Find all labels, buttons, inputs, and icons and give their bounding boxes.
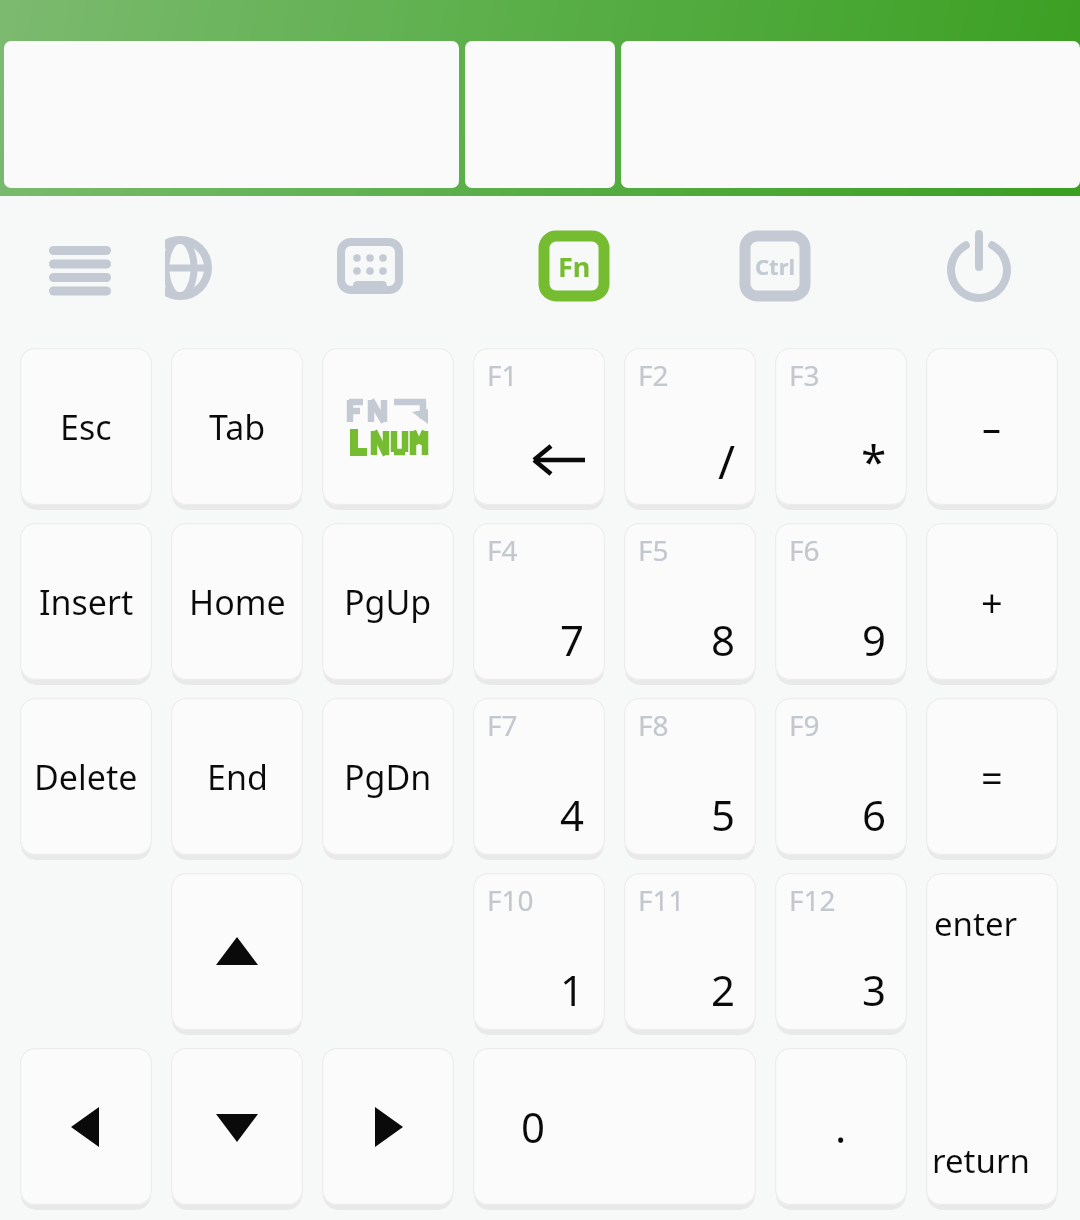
staticText: *	[861, 430, 887, 493]
staticText: 1	[560, 961, 585, 1018]
button[interactable]: PgDn	[322, 698, 454, 855]
staticText: Insert	[39, 579, 134, 625]
button[interactable]: F10	[473, 873, 605, 1030]
button[interactable]: Arrow right	[322, 1048, 454, 1205]
button[interactable]: enter	[926, 873, 1058, 1205]
staticText: –	[982, 401, 1002, 453]
staticText: 2	[711, 961, 736, 1018]
button[interactable]: Menu	[36, 228, 124, 304]
staticText: /	[718, 430, 736, 493]
staticText: Tab	[209, 404, 266, 450]
staticText: F4	[487, 531, 518, 569]
staticText: F11	[638, 881, 685, 919]
staticText: PgDn	[344, 754, 432, 800]
button[interactable]: Power	[940, 226, 1018, 306]
staticText: 8	[711, 611, 736, 668]
button[interactable]: F7	[473, 698, 605, 855]
staticText: F2	[638, 356, 669, 394]
button[interactable]: Backspace	[473, 348, 605, 505]
staticText: 5	[711, 786, 736, 843]
staticText: enter	[934, 901, 1018, 946]
staticText: F10	[487, 881, 534, 919]
staticText: PgUp	[344, 579, 432, 625]
button[interactable]: –	[926, 348, 1058, 505]
staticText: F6	[789, 531, 820, 569]
staticText: F8	[638, 706, 669, 744]
staticText: return	[932, 1138, 1030, 1183]
button[interactable]: F2	[624, 348, 756, 505]
button[interactable]: Control key	[739, 230, 811, 302]
button[interactable]: PgUp	[322, 523, 454, 680]
button[interactable]: F12	[775, 873, 907, 1030]
button[interactable]: Home	[171, 523, 303, 680]
staticText: 3	[862, 961, 887, 1018]
button[interactable]: Function key Fn	[538, 230, 610, 302]
button[interactable]: Suggestion 2	[465, 41, 615, 188]
staticText: Home	[189, 579, 286, 625]
staticText: +	[981, 576, 1003, 628]
staticText: F1	[487, 356, 518, 394]
button[interactable]: Esc	[20, 348, 152, 505]
button[interactable]: Suggestion 3	[621, 41, 1080, 188]
staticText: F5	[638, 531, 669, 569]
button[interactable]: F3	[775, 348, 907, 505]
staticText: =	[981, 751, 1003, 803]
button[interactable]: Tab	[171, 348, 303, 505]
staticText: F9	[789, 706, 820, 744]
button[interactable]: F9	[775, 698, 907, 855]
button[interactable]: Suggestion 1	[4, 41, 459, 188]
staticText: 7	[560, 611, 585, 668]
button[interactable]: F8	[624, 698, 756, 855]
staticText: Esc	[60, 404, 112, 450]
button[interactable]: Arrow up	[171, 873, 303, 1030]
button[interactable]: Keyboard	[331, 228, 409, 306]
button[interactable]: F4	[473, 523, 605, 680]
staticText: 6	[862, 786, 887, 843]
button[interactable]: Insert	[20, 523, 152, 680]
button[interactable]: F6	[775, 523, 907, 680]
staticText: F7	[487, 706, 518, 744]
staticText: Ctrl	[755, 251, 796, 281]
button[interactable]: F5	[624, 523, 756, 680]
staticText: 4	[560, 786, 585, 843]
button[interactable]: Language	[140, 228, 220, 308]
button[interactable]: =	[926, 698, 1058, 855]
staticText: .	[835, 1098, 847, 1155]
button[interactable]: Arrow down	[171, 1048, 303, 1205]
staticText: Fn	[558, 248, 591, 285]
staticText: 9	[862, 611, 887, 668]
button[interactable]: End	[171, 698, 303, 855]
button[interactable]: Fn Num lock	[322, 348, 454, 505]
staticText: End	[207, 754, 268, 800]
button[interactable]: Delete	[20, 698, 152, 855]
staticText: F3	[789, 356, 820, 394]
button[interactable]: Arrow left	[20, 1048, 152, 1205]
staticText: Delete	[34, 754, 138, 800]
staticText: 0	[521, 1098, 546, 1155]
button[interactable]: .	[775, 1048, 907, 1205]
button[interactable]: 0	[473, 1048, 756, 1205]
button[interactable]: +	[926, 523, 1058, 680]
button[interactable]: F11	[624, 873, 756, 1030]
staticText: F12	[789, 881, 836, 919]
